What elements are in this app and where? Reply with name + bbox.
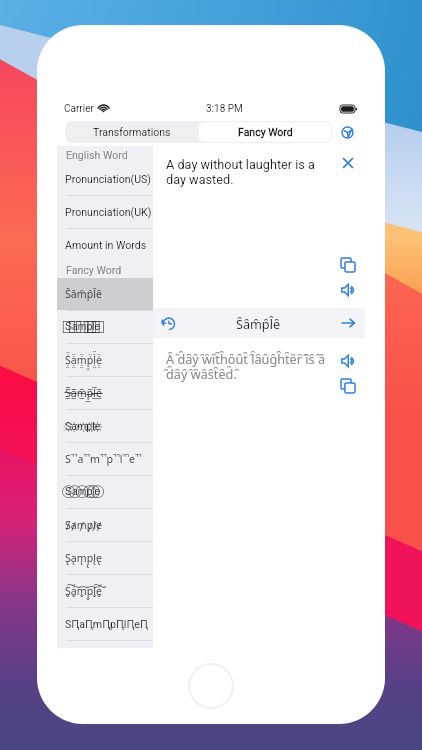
button[interactable]: Copy [340, 257, 356, 273]
staticText: S̑ȃm̑p̑l̑ȇ [65, 287, 102, 301]
button[interactable]: S̑ȃm̑p̑l̑ȇ [57, 278, 153, 310]
button[interactable]: Fancy Word [199, 122, 331, 142]
staticText: S⃝a⃝m⃝p⃝l⃝e⃝ [65, 487, 101, 498]
button[interactable]: Pronunciation(UK) [57, 196, 153, 228]
button[interactable]: S̸a̸m̸p̸l̸e̸ [57, 509, 153, 541]
button[interactable]: Speak [340, 282, 356, 298]
staticText: Pronunciation(UK) [65, 206, 152, 218]
staticText: Transformations [93, 126, 171, 138]
button[interactable]: Speak [340, 353, 356, 369]
button[interactable]: Transformations [66, 122, 197, 142]
button[interactable]: S̶̲̅a̶̲̅m̶̲̅p̶̲̅l̶̲̅e̶̲̅ [57, 377, 153, 409]
staticText: S̚̚a̚̚m̚̚p̚̚l̚̚e̚̚ [65, 452, 142, 466]
button[interactable]: S⃝a⃝m⃝p⃝l⃝e⃝ [57, 476, 153, 508]
staticText: Ṩ̤̈ạ̤̇̈ṃ̤̇̈ṗ̣̤̈ḷ̤̇̈ẹ̤̇̈ [65, 353, 102, 367]
staticText: S̢a̢m̢p̢l̢e̢ [65, 551, 102, 565]
button[interactable]: Ṩ̤̈ạ̤̇̈ṃ̤̇̈ṗ̣̤̈ḷ̤̇̈ẹ̤̇̈ [57, 344, 153, 376]
button[interactable]: S̬͠a̬͠m̬͠p̬͠l̬͠e̬͠ [57, 575, 153, 607]
button[interactable]: S̢a̢m̢p̢l̢e̢ [57, 542, 153, 574]
button[interactable]: Copy [340, 378, 356, 394]
staticText: S̸a̸m̸p̸l̸e̸ [65, 518, 102, 532]
staticText: S̑ȃm̑p̑l̑ȇ [176, 315, 340, 332]
staticText: SԤaԤmԤpԤlԤeԤ [65, 617, 148, 631]
button[interactable]: S̑ȃm̑p̑l̑ȇ [153, 308, 365, 338]
button[interactable]: Settings [337, 122, 357, 142]
button[interactable]: S⃞a⃞m⃞p⃞l⃞e⃞ [57, 311, 153, 343]
staticText: S҉a҉m҉p҉l҉e҉ [65, 420, 101, 432]
staticText: S̶̲̅a̶̲̅m̶̲̅p̶̲̅l̶̲̅e̶̲̅ [65, 386, 102, 400]
staticText: Carrier [64, 103, 94, 115]
staticText: Pronunciation(US) [65, 173, 152, 185]
button[interactable]: S҉a҉m҉p҉l҉e҉ [57, 410, 153, 442]
staticText: S̬͠a̬͠m̬͠p̬͠l̬͠e̬͠ [65, 584, 102, 598]
staticText: 3:18 PM [206, 103, 243, 115]
staticText: Amount in Words [65, 239, 147, 251]
staticText: S⃞a⃞m⃞p⃞l⃞e⃞ [65, 322, 101, 333]
staticText: Fancy Word [66, 264, 122, 276]
staticText: A day without laughter is a day wasted. [166, 157, 326, 187]
button[interactable]: Close [340, 155, 356, 171]
button[interactable]: SԤaԤmԤpԤlԤeԤ [57, 608, 153, 640]
staticText: Ȃ ̑d̑ȃy̑ ̑w̑ȋt̑h̑ȏȗt̑ ̑l̑ȃȗg̑h̑t̑… [166, 350, 326, 383]
button[interactable]: Amount in Words [57, 229, 153, 261]
staticText: English Word [66, 149, 128, 161]
staticText: Fancy Word [238, 126, 293, 138]
button[interactable]: Pronunciation(US) [57, 163, 153, 195]
button[interactable]: S̚̚a̚̚m̚̚p̚̚l̚̚e̚̚ [57, 443, 153, 475]
